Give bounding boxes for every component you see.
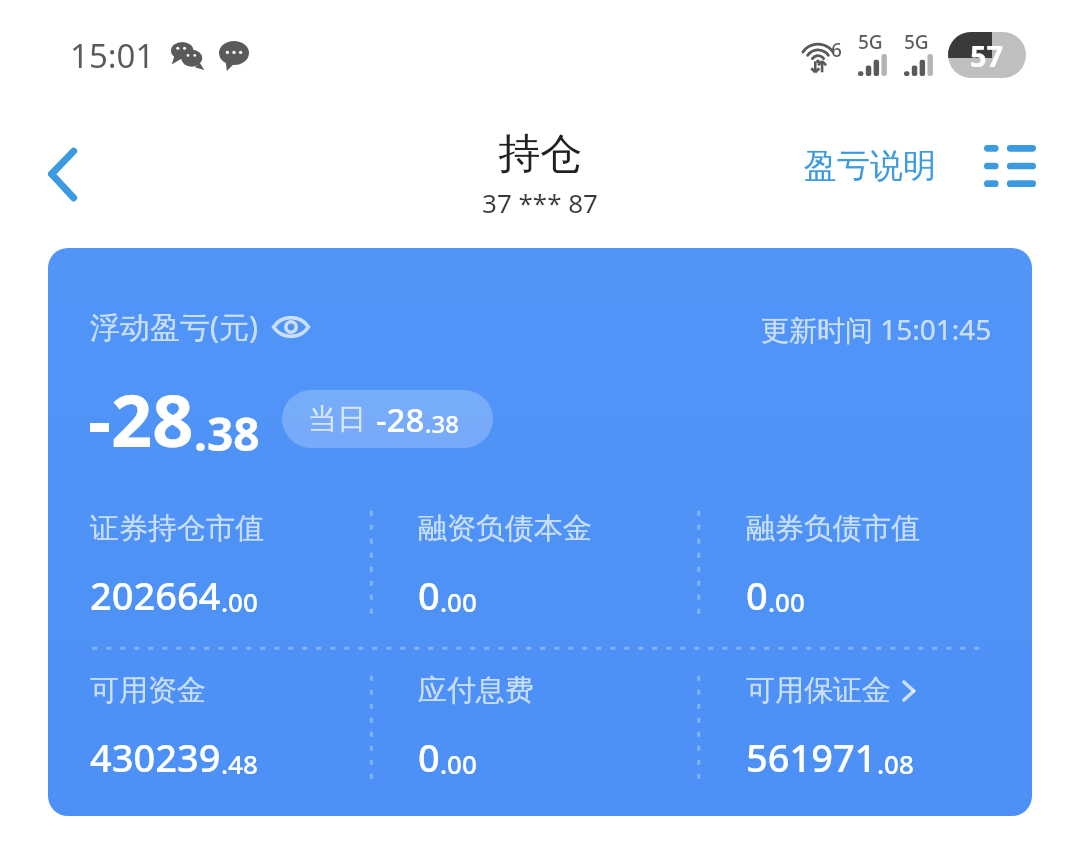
staticText: 202664 — [90, 569, 221, 621]
staticText: 应付息费 — [418, 672, 534, 709]
staticText: 57 — [970, 36, 1004, 75]
staticText: 430239 — [90, 731, 221, 783]
staticText: 37 *** 87 — [482, 185, 598, 220]
staticText: -28 — [88, 370, 194, 468]
button[interactable]: 可用资金 — [48, 648, 376, 816]
staticText: 融券负债市值 — [746, 510, 920, 547]
staticText: 561971 — [746, 731, 877, 783]
staticText: 盈亏说明 — [804, 145, 936, 187]
button[interactable]: Back — [24, 135, 102, 213]
staticText: 可用保证金 — [746, 672, 891, 709]
staticText: .00 — [440, 746, 477, 781]
staticText: 5G — [858, 29, 883, 55]
staticText: -28 — [376, 397, 425, 442]
staticText: .00 — [768, 584, 805, 619]
staticText: 可用资金 — [90, 672, 206, 709]
staticText: 证券持仓市值 — [90, 510, 264, 547]
staticText: .48 — [221, 746, 258, 781]
staticText: 5G — [904, 29, 929, 55]
staticText: 0 — [418, 731, 440, 783]
staticText: 0 — [746, 569, 768, 621]
staticText: .08 — [877, 746, 914, 781]
staticText: 持仓 — [498, 128, 582, 181]
button[interactable]: 融券负债市值 — [704, 486, 1032, 648]
button[interactable]: 可用保证金 — [704, 648, 1032, 816]
staticText: 更新时间 15:01:45 — [761, 310, 992, 348]
button[interactable]: List view — [980, 136, 1040, 196]
staticText: .38 — [425, 407, 459, 440]
staticText: 6 — [831, 37, 842, 63]
button[interactable]: 应付息费 — [376, 648, 704, 816]
button[interactable]: 盈亏说明 — [794, 133, 946, 199]
staticText: .38 — [194, 402, 260, 465]
staticText: .00 — [440, 584, 477, 619]
button[interactable]: 融资负债本金 — [376, 486, 704, 648]
button[interactable]: Toggle amount visibility — [90, 306, 310, 347]
staticText: 当日 — [308, 401, 366, 438]
staticText: 15:01 — [70, 33, 155, 78]
button[interactable]: 当日 — [282, 390, 493, 448]
button[interactable]: 证券持仓市值 — [48, 486, 376, 648]
staticText: 浮动盈亏(元) — [90, 306, 258, 347]
staticText: .00 — [221, 584, 258, 619]
staticText: 0 — [418, 569, 440, 621]
staticText: 融资负债本金 — [418, 510, 592, 547]
